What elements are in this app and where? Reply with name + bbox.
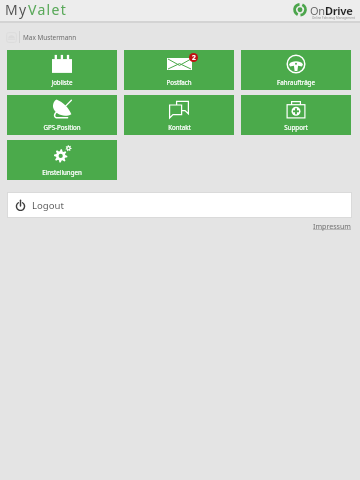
staticText: On — [310, 3, 325, 18]
staticText: Jobliste — [51, 78, 73, 86]
staticText: Postfach — [166, 78, 192, 86]
staticText: Kontakt — [168, 123, 191, 131]
staticText: Drive — [325, 3, 353, 18]
staticText: 2 — [192, 53, 196, 62]
staticText: Support — [284, 123, 308, 131]
button[interactable]: Logout — [7, 192, 352, 218]
button[interactable]: Einstellungen — [7, 140, 117, 180]
staticText: Einstellungen — [42, 168, 82, 176]
button[interactable]: Postfach — [124, 50, 234, 90]
button[interactable]: Kontakt — [124, 95, 234, 135]
staticText: Logout — [32, 199, 64, 212]
staticText: Valet — [28, 0, 68, 19]
staticText: GPS-Position — [43, 123, 81, 131]
button[interactable]: GPS-Position — [7, 95, 117, 135]
staticText: Online Fahrzeug Management — [312, 16, 355, 20]
staticText: Max Mustermann — [23, 33, 77, 42]
button[interactable]: Impressum — [313, 221, 352, 231]
staticText: Fahraufträge — [277, 78, 315, 86]
button[interactable]: Support — [241, 95, 351, 135]
staticText: My — [5, 0, 28, 19]
button[interactable]: Fahraufträge — [241, 50, 351, 90]
button[interactable]: Jobliste — [7, 50, 117, 90]
